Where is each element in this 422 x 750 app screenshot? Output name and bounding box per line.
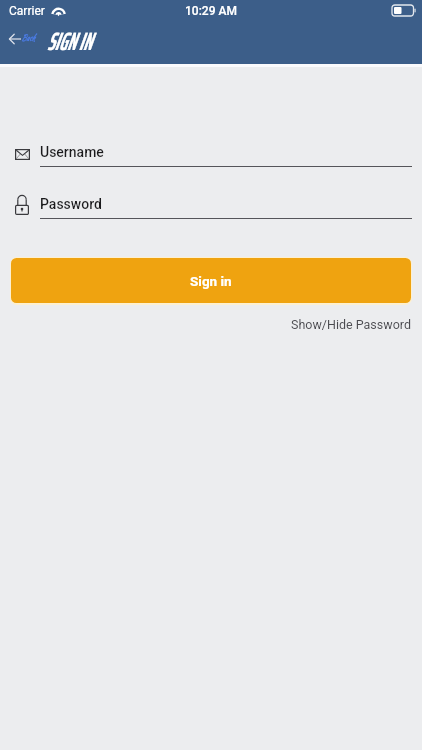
staticText: Password [40, 196, 102, 212]
staticText: Username [40, 144, 104, 160]
staticText: Back [21, 31, 35, 44]
staticText: 10:29 AM [185, 4, 237, 18]
staticText: SIGN IN [47, 22, 92, 61]
staticText: Sign in [190, 273, 232, 289]
button[interactable]: Sign in [11, 258, 411, 303]
button[interactable]: Back [7, 32, 41, 45]
staticText: Show/Hide Password [291, 317, 411, 332]
staticText: Carrier [9, 4, 45, 18]
button[interactable]: Username [0, 144, 422, 168]
button[interactable]: Show/Hide Password [291, 317, 422, 332]
button[interactable]: Password [0, 196, 422, 220]
